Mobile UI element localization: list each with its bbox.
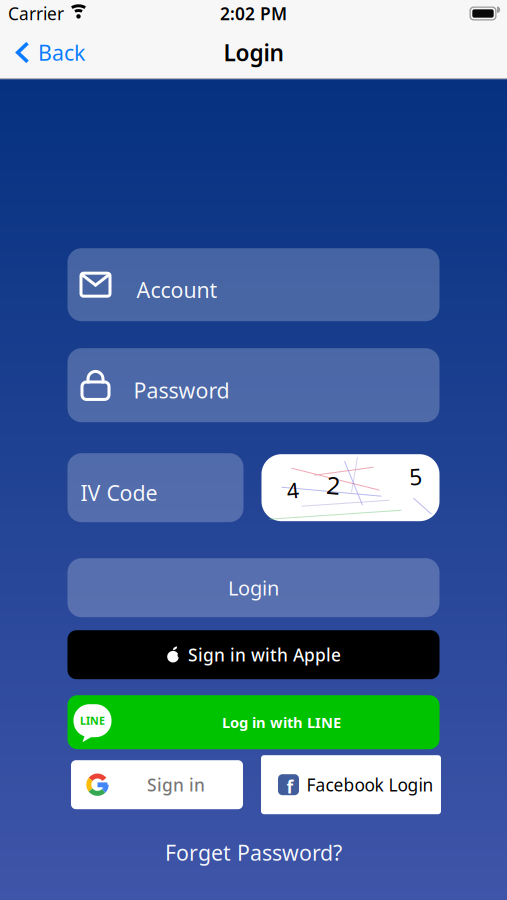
button[interactable]: Forget Password? bbox=[165, 838, 342, 866]
staticText: Sign in with Apple bbox=[188, 643, 341, 666]
staticText: Account bbox=[136, 275, 217, 304]
staticText: 2 bbox=[326, 469, 340, 501]
staticText: Log in with LINE bbox=[222, 712, 341, 732]
staticText: f bbox=[286, 775, 293, 798]
staticText: 4 bbox=[286, 476, 298, 504]
staticText: Login bbox=[228, 574, 279, 601]
button[interactable]: Password bbox=[67, 348, 439, 422]
staticText: Facebook Login bbox=[306, 773, 433, 796]
staticText: IV Code bbox=[80, 478, 157, 507]
staticText: Password bbox=[133, 376, 229, 404]
button[interactable]: Account bbox=[67, 248, 439, 321]
button[interactable]: LINE bbox=[67, 695, 439, 749]
staticText: Login bbox=[223, 37, 283, 67]
staticText: 2:02 PM bbox=[220, 2, 287, 25]
button[interactable]: Sign in bbox=[71, 760, 243, 809]
staticText: Back bbox=[38, 38, 85, 67]
button[interactable]: Back bbox=[0, 38, 95, 67]
button[interactable]: Login bbox=[67, 558, 439, 617]
button[interactable]: Sign in with Apple bbox=[67, 630, 439, 679]
staticText: Forget Password? bbox=[165, 838, 342, 866]
button[interactable]: f bbox=[261, 755, 441, 814]
staticText: 5 bbox=[409, 461, 422, 491]
staticText: LINE bbox=[80, 714, 105, 728]
staticText: Sign in bbox=[147, 773, 205, 796]
staticText: Carrier bbox=[8, 2, 64, 25]
button[interactable]: IV Code bbox=[67, 453, 243, 522]
